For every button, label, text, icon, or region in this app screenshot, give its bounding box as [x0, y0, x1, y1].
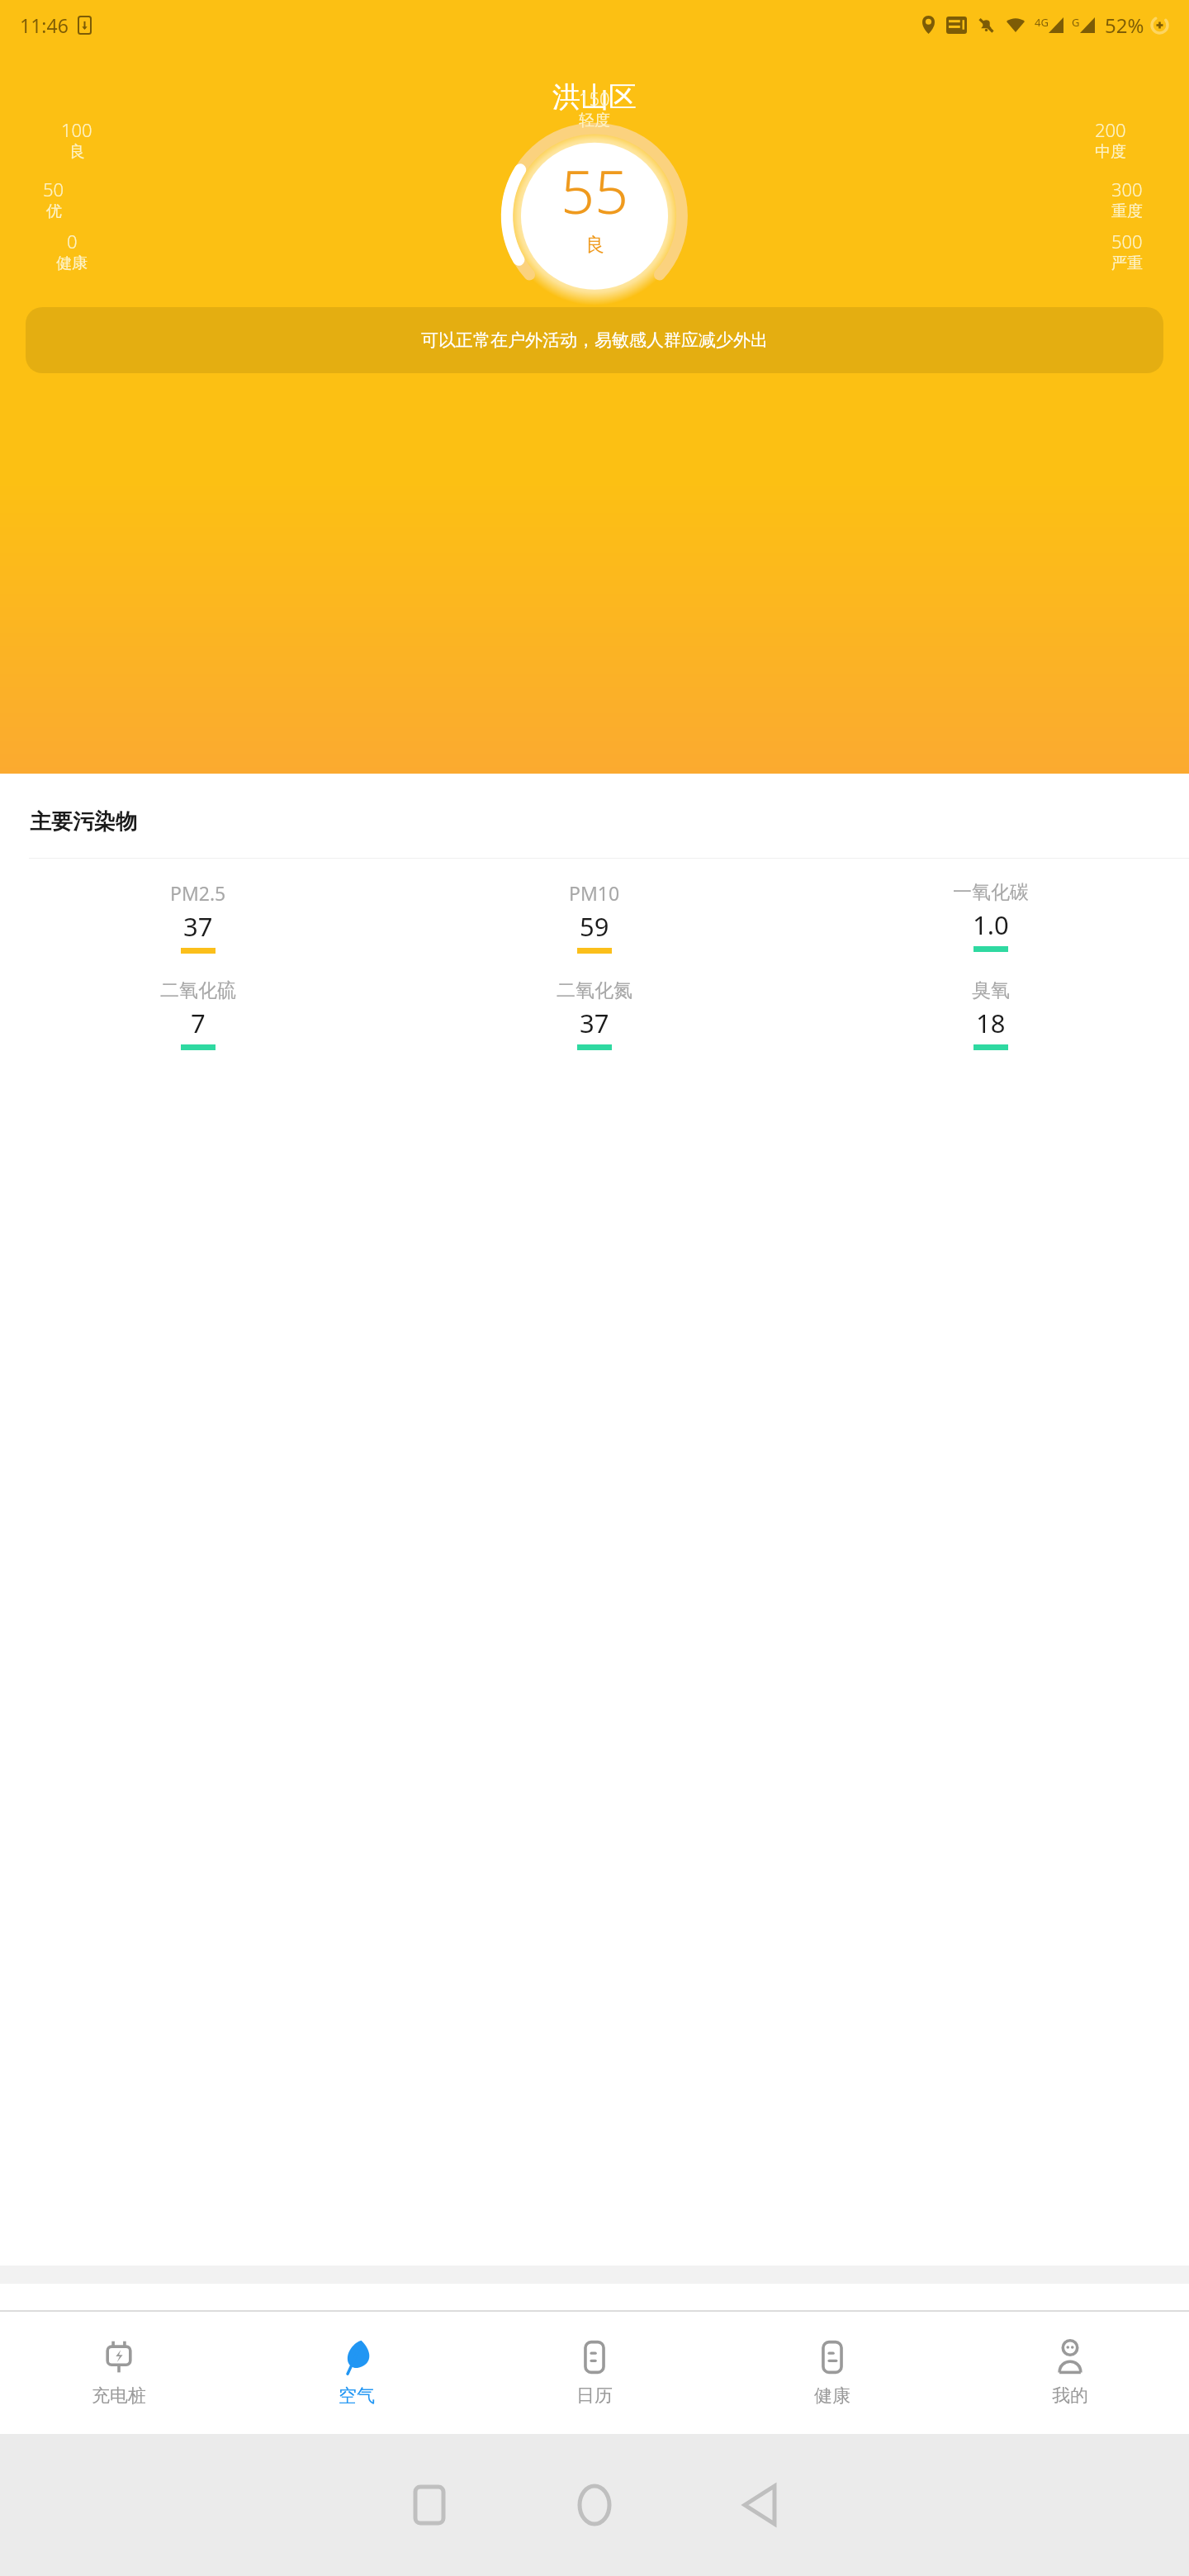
staticText: 良 — [69, 142, 85, 162]
staticText: 健康 — [814, 2384, 850, 2408]
button[interactable]: 二氧化硫 — [0, 975, 396, 1054]
staticText: 空气 — [339, 2384, 375, 2408]
staticText: G — [1072, 15, 1080, 30]
staticText: 59 — [580, 909, 609, 944]
button[interactable]: Recents — [347, 2434, 512, 2576]
staticText: 300 — [1111, 177, 1143, 201]
staticText: 健康 — [56, 253, 88, 273]
button[interactable]: 臭氧 — [793, 975, 1189, 1054]
button[interactable]: 日历 — [476, 2312, 713, 2434]
staticText: 18 — [976, 1006, 1006, 1040]
staticText: 4G — [1035, 15, 1049, 30]
staticText: 优 — [46, 201, 62, 221]
button[interactable]: PM2.5 — [0, 877, 396, 957]
button[interactable]: Back — [677, 2434, 842, 2576]
button[interactable]: 可以正常在户外活动，易敏感人群应减少外出 — [26, 307, 1163, 373]
staticText: 重度 — [1111, 201, 1143, 221]
staticText: 二氧化氮 — [557, 978, 632, 1002]
staticText: 轻度 — [579, 111, 610, 130]
staticText: 一氧化碳 — [953, 880, 1029, 904]
staticText: 主要污染物 — [30, 808, 137, 836]
button[interactable]: 充电桩 — [0, 2312, 238, 2434]
staticText: 500 — [1111, 229, 1143, 253]
staticText: 7 — [191, 1006, 206, 1040]
staticText: PM2.5 — [170, 880, 226, 906]
staticText: 11:46 — [20, 12, 69, 38]
button[interactable]: 健康 — [713, 2312, 951, 2434]
staticText: 我的 — [1052, 2384, 1088, 2408]
staticText: 37 — [580, 1006, 609, 1040]
button[interactable]: PM10 — [396, 877, 793, 957]
staticText: 日历 — [576, 2384, 613, 2408]
staticText: 充电桩 — [92, 2384, 146, 2408]
staticText: 臭氧 — [972, 978, 1010, 1002]
staticText: 严重 — [1111, 253, 1143, 273]
staticText: 良 — [585, 233, 604, 257]
staticText: 洪山区 — [552, 79, 637, 115]
staticText: 52% — [1105, 12, 1144, 39]
staticText: 1.0 — [973, 907, 1009, 942]
staticText: PM10 — [569, 880, 620, 906]
staticText: 200 — [1095, 117, 1126, 142]
staticText: 0 — [67, 229, 78, 253]
staticText: 55 — [561, 150, 629, 231]
button[interactable]: 空气 — [238, 2312, 476, 2434]
button[interactable]: 一氧化碳 — [793, 877, 1189, 955]
staticText: 50 — [43, 177, 64, 201]
staticText: 37 — [183, 909, 213, 944]
staticText: 二氧化硫 — [160, 978, 236, 1002]
staticText: 可以正常在户外活动，易敏感人群应减少外出 — [47, 329, 1142, 351]
staticText: 中度 — [1095, 142, 1126, 162]
staticText: 150 — [579, 86, 610, 111]
button[interactable]: 二氧化氮 — [396, 975, 793, 1054]
button[interactable]: 我的 — [951, 2312, 1189, 2434]
staticText: 100 — [61, 117, 92, 142]
button[interactable]: Home — [512, 2434, 677, 2576]
